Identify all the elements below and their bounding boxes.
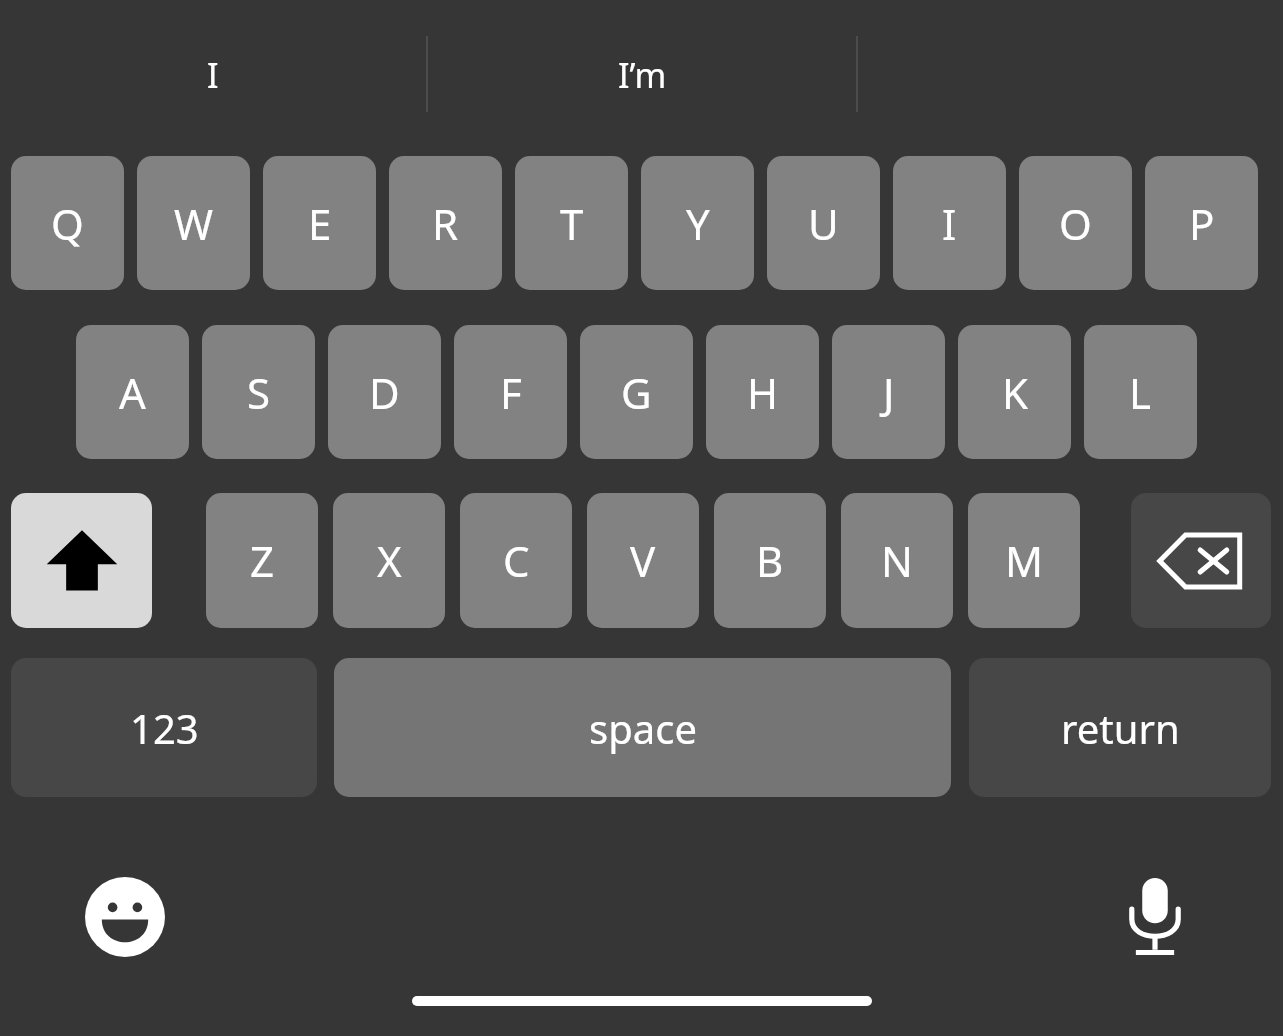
- button[interactable]: Y: [641, 156, 754, 290]
- button[interactable]: return: [969, 658, 1271, 797]
- staticText: 123: [130, 701, 199, 755]
- button[interactable]: J: [832, 325, 945, 459]
- button[interactable]: N: [841, 493, 953, 628]
- button[interactable]: Backspace: [1131, 493, 1271, 628]
- button[interactable]: F: [454, 325, 567, 459]
- staticText: Q: [51, 195, 84, 252]
- button[interactable]: K: [958, 325, 1071, 459]
- button[interactable]: S: [202, 325, 315, 459]
- staticText: E: [308, 195, 332, 252]
- button[interactable]: R: [389, 156, 502, 290]
- staticText: U: [808, 195, 839, 252]
- staticText: B: [756, 532, 784, 589]
- button[interactable]: D: [328, 325, 441, 459]
- staticText: M: [1005, 532, 1044, 589]
- staticText: Y: [686, 195, 710, 252]
- staticText: C: [503, 532, 530, 589]
- button[interactable]: G: [580, 325, 693, 459]
- button[interactable]: Dictation: [1115, 877, 1195, 957]
- staticText: return: [1061, 701, 1180, 755]
- button[interactable]: 123: [11, 658, 317, 797]
- button[interactable]: L: [1084, 325, 1197, 459]
- staticText: N: [881, 532, 913, 589]
- staticText: V: [630, 532, 656, 589]
- staticText: F: [500, 364, 522, 421]
- button[interactable]: I’m: [428, 36, 856, 114]
- button[interactable]: C: [460, 493, 572, 628]
- button[interactable]: A: [76, 325, 189, 459]
- button[interactable]: U: [767, 156, 880, 290]
- staticText: I: [942, 195, 957, 252]
- staticText: R: [432, 195, 459, 252]
- button[interactable]: O: [1019, 156, 1132, 290]
- button[interactable]: Shift: [11, 493, 152, 628]
- button[interactable]: V: [587, 493, 699, 628]
- staticText: A: [119, 364, 146, 421]
- button[interactable]: B: [714, 493, 826, 628]
- button[interactable]: E: [263, 156, 376, 290]
- staticText: P: [1189, 195, 1215, 252]
- staticText: S: [247, 364, 271, 421]
- button[interactable]: I: [893, 156, 1006, 290]
- staticText: L: [1129, 364, 1152, 421]
- staticText: H: [747, 364, 779, 421]
- button[interactable]: W: [137, 156, 250, 290]
- button[interactable]: space: [334, 658, 951, 797]
- button[interactable]: Z: [206, 493, 318, 628]
- staticText: I: [207, 52, 219, 98]
- button[interactable]: T: [515, 156, 628, 290]
- staticText: T: [560, 195, 584, 252]
- staticText: W: [174, 195, 214, 252]
- button[interactable]: H: [706, 325, 819, 459]
- staticText: X: [377, 532, 402, 589]
- staticText: G: [621, 364, 652, 421]
- button[interactable]: I: [0, 36, 426, 114]
- button[interactable]: M: [968, 493, 1080, 628]
- staticText: J: [883, 364, 895, 421]
- staticText: I’m: [618, 52, 667, 98]
- staticText: D: [369, 364, 400, 421]
- staticText: O: [1059, 195, 1092, 252]
- staticText: Z: [250, 532, 275, 589]
- button[interactable]: Q: [11, 156, 124, 290]
- button[interactable]: P: [1145, 156, 1258, 290]
- staticText: space: [589, 701, 697, 755]
- button[interactable]: Emoji keyboard: [85, 877, 165, 957]
- staticText: K: [1002, 364, 1028, 421]
- button[interactable]: X: [333, 493, 445, 628]
